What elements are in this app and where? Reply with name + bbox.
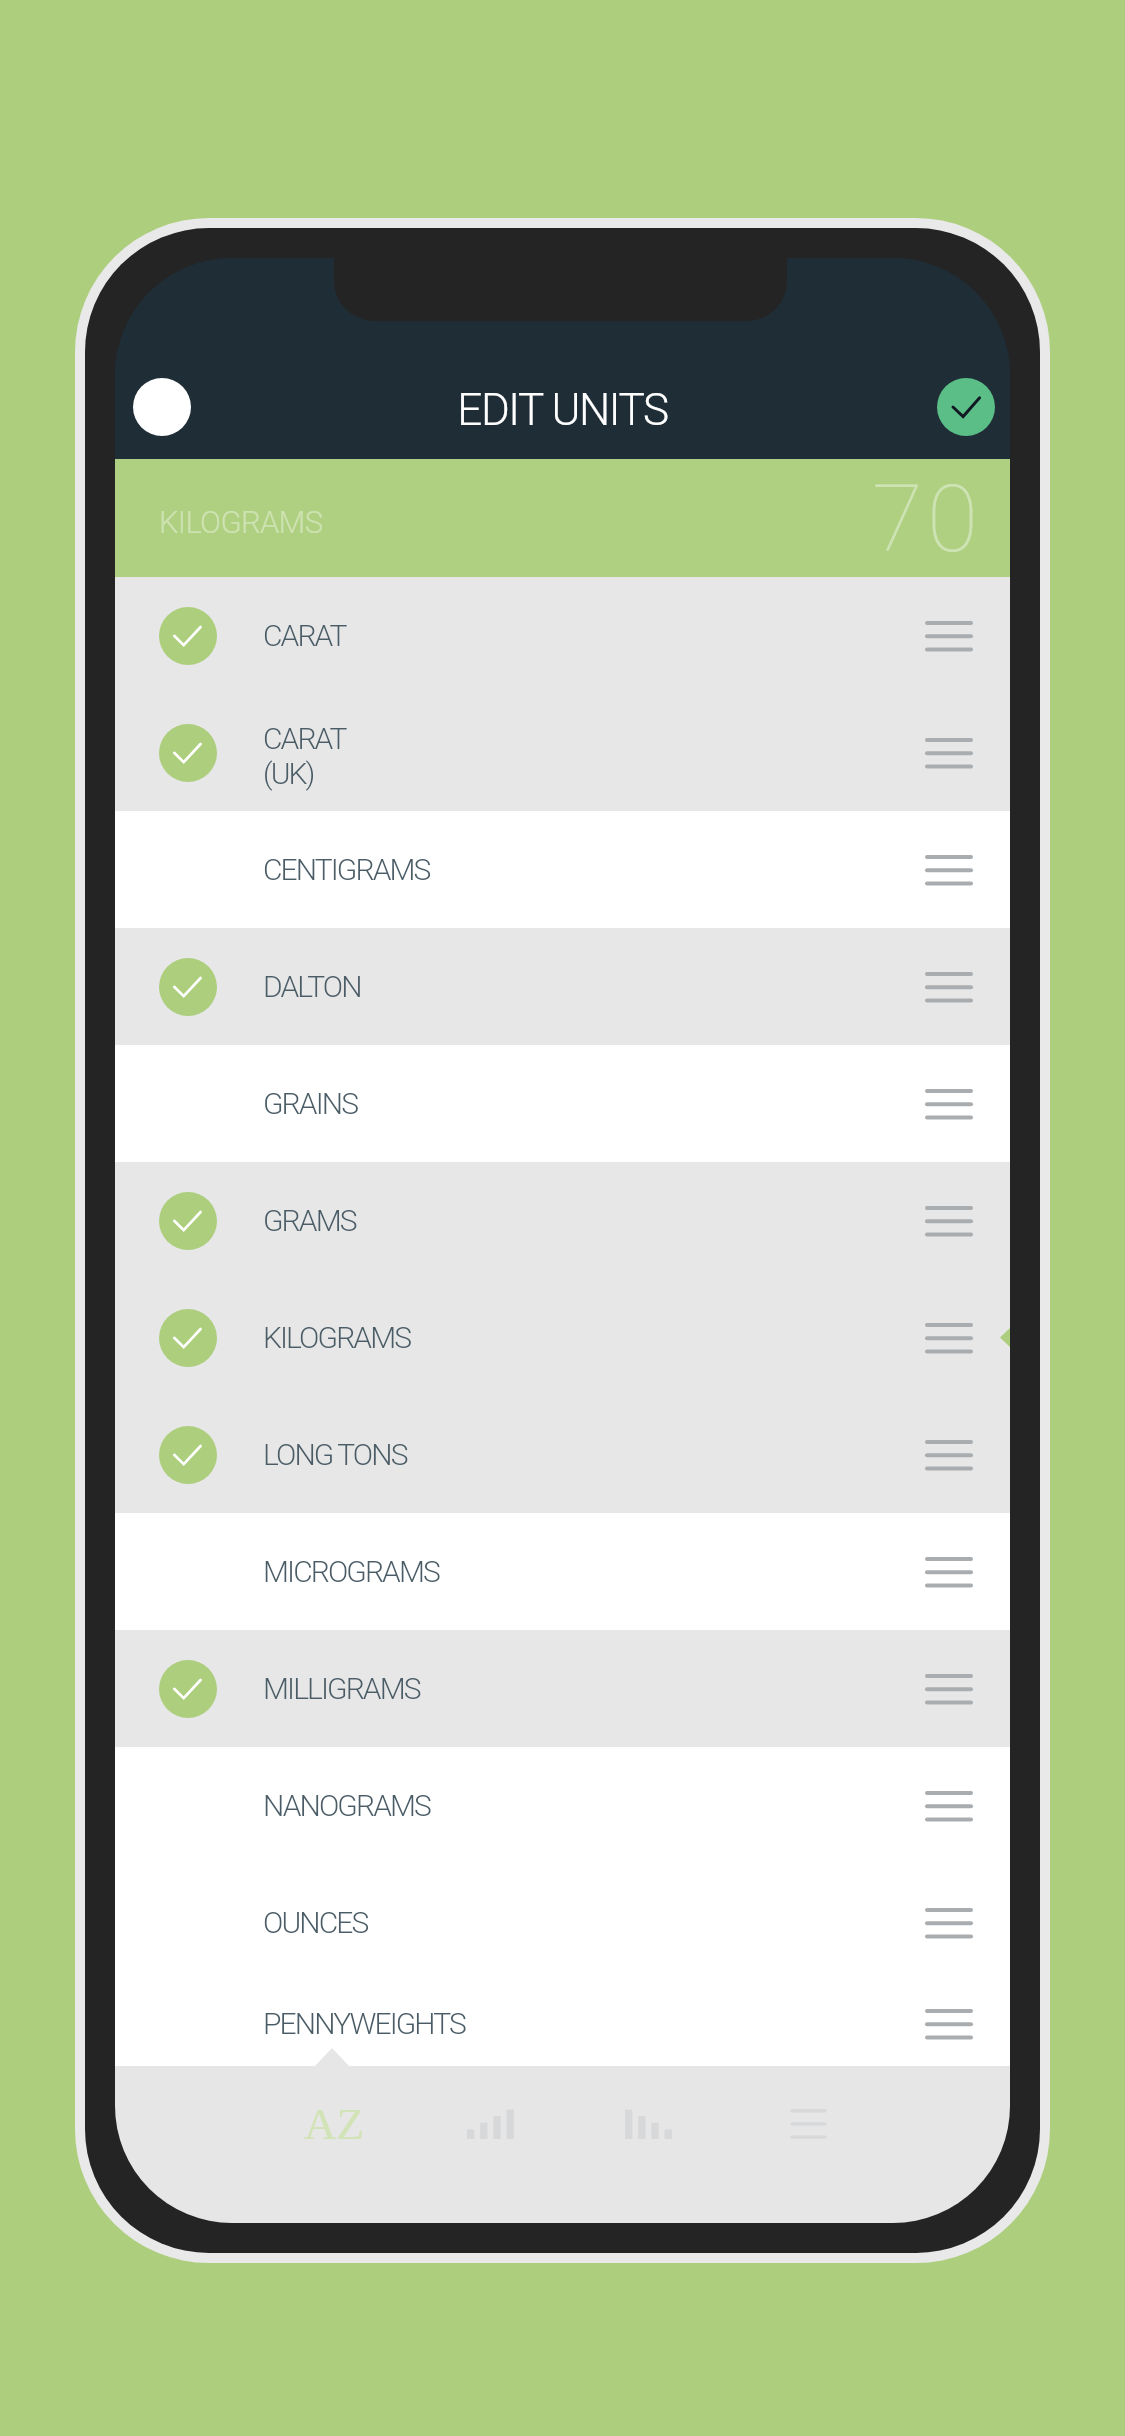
button[interactable]: Reorder bbox=[904, 598, 994, 674]
button[interactable]: Enabled, tap to disable bbox=[159, 958, 217, 1016]
button[interactable]: Enabled, tap to disable bbox=[159, 1660, 217, 1718]
staticText: KILOGRAMS bbox=[159, 504, 323, 540]
button[interactable]: Reorder bbox=[904, 1651, 994, 1727]
button[interactable]: GRAINS bbox=[115, 1045, 1010, 1162]
staticText: KILOGRAMS bbox=[263, 1320, 411, 1355]
button[interactable]: Enabled, tap to disable bbox=[115, 577, 1010, 694]
button[interactable]: Enabled, tap to disable bbox=[115, 694, 1010, 811]
staticText: LONG TONS bbox=[263, 1437, 407, 1472]
button[interactable]: MICROGRAMS bbox=[115, 1513, 1010, 1630]
button[interactable]: Enabled, tap to disable bbox=[115, 1396, 1010, 1513]
staticText: EDIT UNITS bbox=[115, 384, 1010, 436]
staticText: CARAT bbox=[263, 721, 346, 756]
staticText: 70 bbox=[872, 465, 982, 574]
button[interactable]: Reorder bbox=[904, 1986, 994, 2062]
staticText: MILLIGRAMS bbox=[263, 1671, 420, 1706]
button[interactable]: Reorder bbox=[904, 715, 994, 791]
button[interactable]: OUNCES bbox=[115, 1864, 1010, 1981]
button[interactable]: CENTIGRAMS bbox=[115, 811, 1010, 928]
button[interactable]: Close bbox=[133, 378, 191, 436]
staticText: MICROGRAMS bbox=[263, 1554, 439, 1589]
staticText: GRAMS bbox=[263, 1203, 356, 1238]
button[interactable]: Done bbox=[937, 378, 995, 436]
button[interactable]: Enabled, tap to disable bbox=[159, 1192, 217, 1250]
button[interactable]: Reorder bbox=[904, 1183, 994, 1259]
staticText: NANOGRAMS bbox=[263, 1788, 430, 1823]
staticText: (UK) bbox=[263, 756, 314, 791]
staticText: GRAINS bbox=[263, 1086, 358, 1121]
staticText: CARAT bbox=[263, 618, 346, 653]
staticText: CENTIGRAMS bbox=[263, 852, 430, 887]
button[interactable]: Reorder bbox=[904, 1417, 994, 1493]
staticText: PENNYWEIGHTS bbox=[263, 2006, 465, 2041]
button[interactable]: Enabled, tap to disable bbox=[115, 1162, 1010, 1279]
button[interactable]: Enabled, tap to disable bbox=[159, 724, 217, 782]
button[interactable]: Reorder bbox=[904, 1300, 994, 1376]
button[interactable]: Reorder bbox=[904, 1534, 994, 1610]
staticText: DALTON bbox=[263, 969, 361, 1004]
button[interactable]: Enabled, tap to disable bbox=[115, 1630, 1010, 1747]
button[interactable]: Enabled, tap to disable bbox=[115, 928, 1010, 1045]
button[interactable]: Enabled, tap to disable bbox=[159, 1309, 217, 1367]
button[interactable]: Reorder bbox=[904, 1066, 994, 1142]
button[interactable]: Sort alphabetically bbox=[278, 2068, 390, 2180]
button[interactable]: NANOGRAMS bbox=[115, 1747, 1010, 1864]
staticText: AZ bbox=[304, 2099, 364, 2149]
staticText: OUNCES bbox=[263, 1905, 368, 1940]
button[interactable]: Enabled, tap to disable bbox=[115, 1279, 1010, 1396]
button[interactable]: Enabled, tap to disable bbox=[159, 1426, 217, 1484]
button[interactable]: Reorder bbox=[904, 949, 994, 1025]
button[interactable]: Reorder bbox=[904, 1768, 994, 1844]
button[interactable]: Sort ascending bbox=[434, 2068, 546, 2180]
button[interactable]: Enabled, tap to disable bbox=[159, 607, 217, 665]
button[interactable]: Reorder bbox=[904, 1885, 994, 1961]
button[interactable]: Reorder bbox=[904, 832, 994, 908]
button[interactable]: PENNYWEIGHTS bbox=[115, 1981, 1010, 2066]
button[interactable]: Sort descending bbox=[592, 2068, 704, 2180]
